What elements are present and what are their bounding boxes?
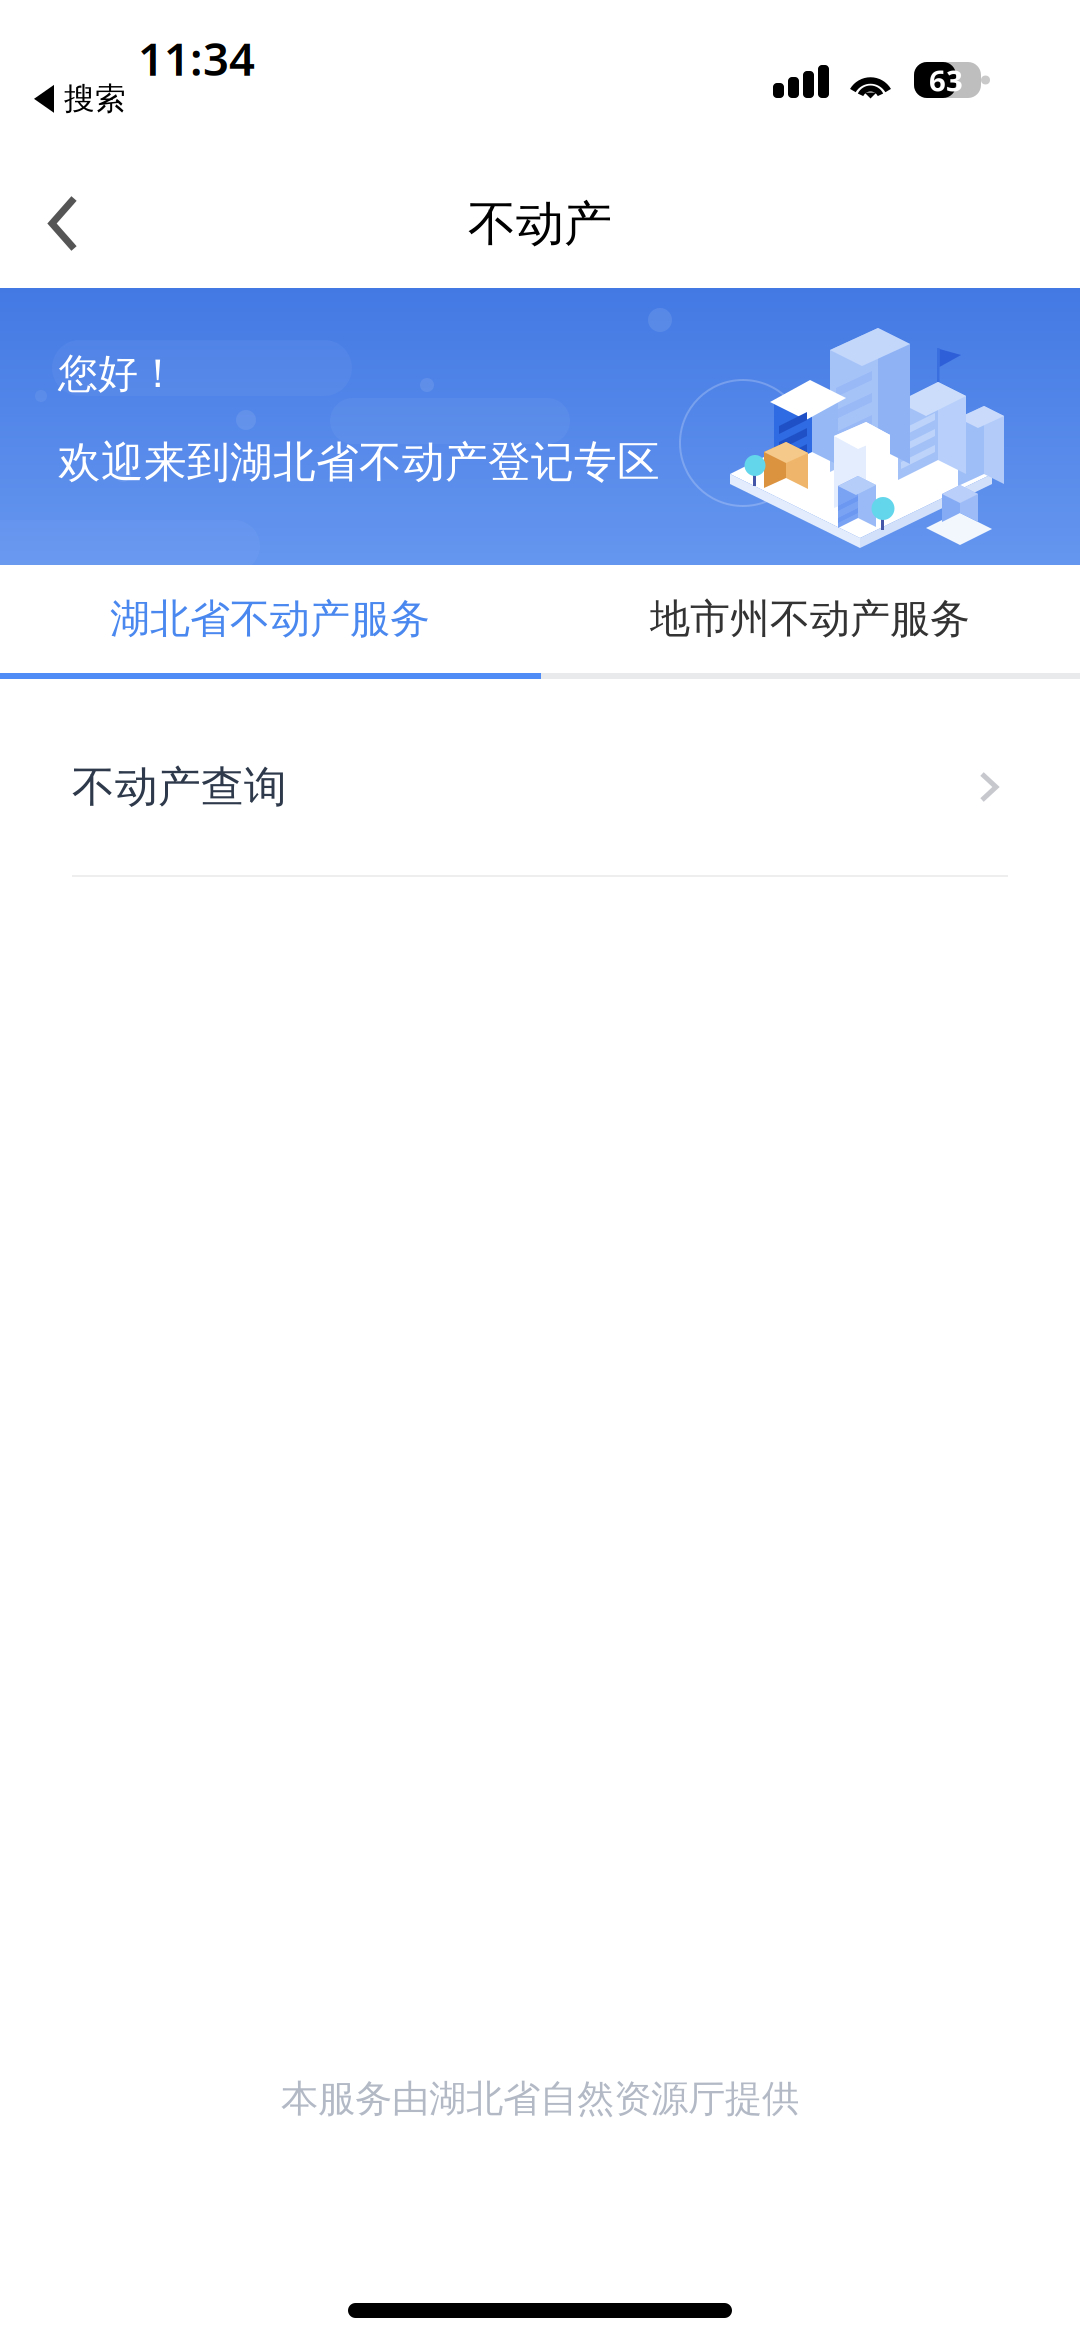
staticText: 不动产	[468, 194, 612, 253]
button[interactable]: 返回搜索	[0, 0, 126, 118]
staticText: 地市州不动产服务	[650, 594, 970, 643]
button[interactable]: 不动产查询	[0, 679, 1080, 875]
staticText: 湖北省不动产服务	[110, 594, 430, 643]
staticText: 11:34	[138, 28, 255, 88]
staticText: 搜索	[64, 80, 126, 118]
staticText: 欢迎来到湖北省不动产登记专区	[58, 436, 660, 488]
button[interactable]: 湖北省不动产服务	[0, 565, 540, 673]
button[interactable]: 返回	[0, 173, 107, 274]
button[interactable]: 地市州不动产服务	[540, 565, 1080, 673]
staticText: 本服务由湖北省自然资源厅提供	[281, 2076, 799, 2122]
staticText: 63	[929, 60, 963, 99]
staticText: 不动产查询	[72, 761, 287, 813]
staticText: 您好！	[58, 349, 178, 398]
